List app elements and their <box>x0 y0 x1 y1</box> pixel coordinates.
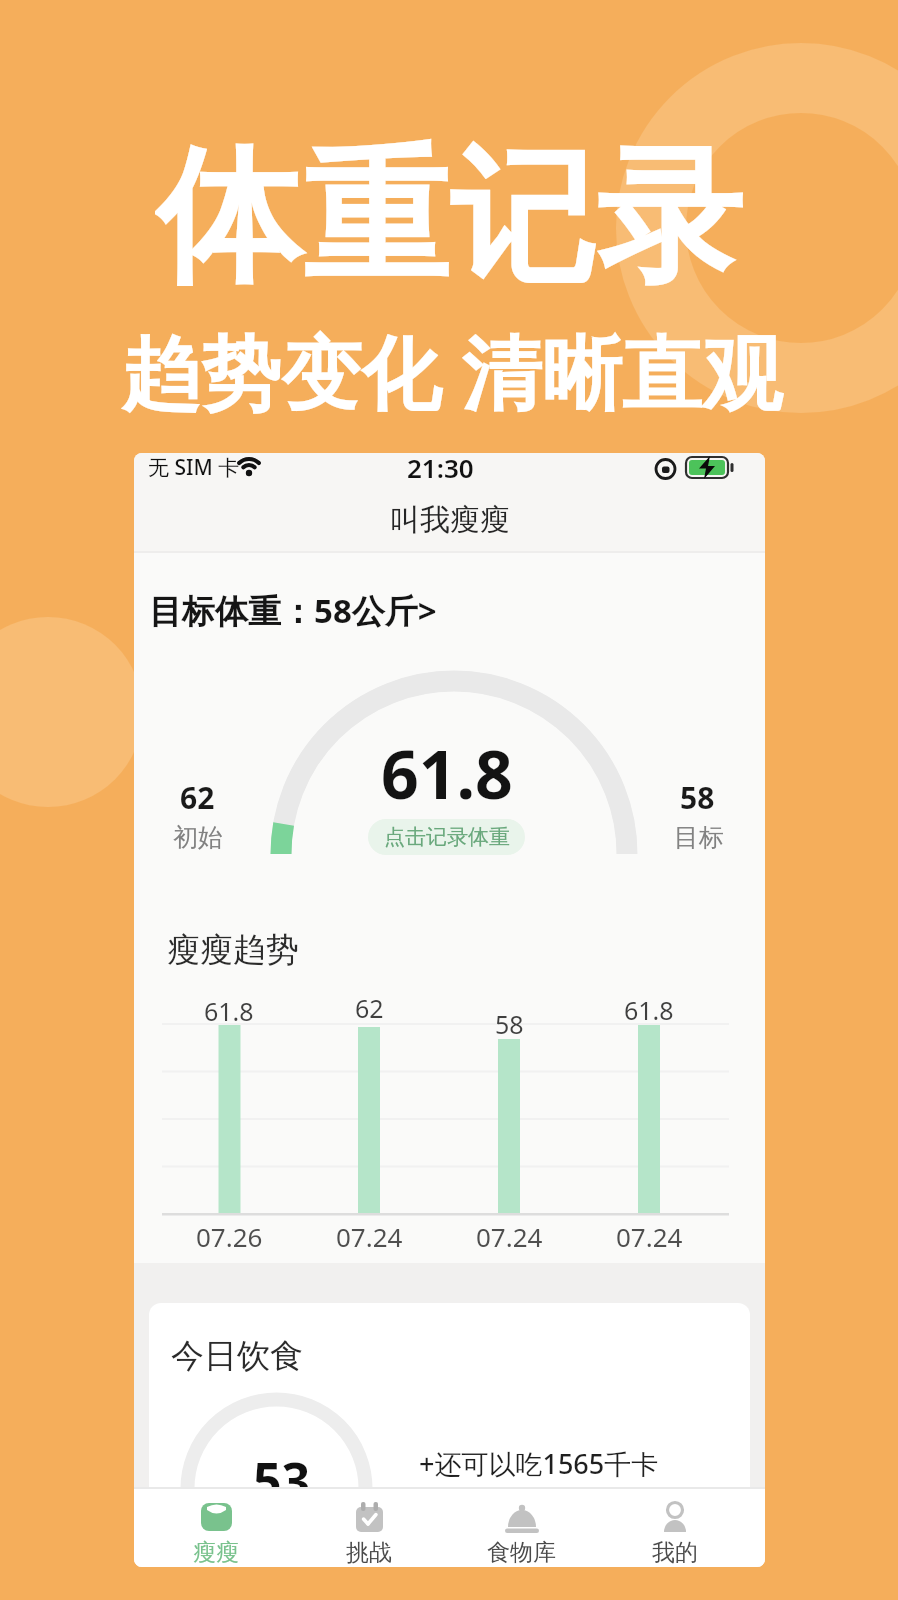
button[interactable]: 食物库 <box>445 1489 598 1567</box>
staticText: 62 <box>355 991 384 1025</box>
staticText: 今日饮食 <box>171 1335 303 1377</box>
staticText: 61.8 <box>624 993 674 1027</box>
button[interactable]: 我的 <box>598 1489 751 1567</box>
staticText: 瘦瘦 <box>193 1538 239 1567</box>
staticText: 趋势变化 清晰直观 <box>121 316 782 425</box>
button[interactable] <box>146 581 486 637</box>
staticText: 初始 <box>173 822 223 853</box>
staticText: 目标 <box>674 822 724 853</box>
button[interactable] <box>149 1303 750 1567</box>
staticText: 体重记录 <box>155 126 743 286</box>
staticText: 53 <box>253 1446 311 1514</box>
staticText: 07.24 <box>336 1219 403 1254</box>
button[interactable]: 点击记录体重 <box>368 819 525 855</box>
button[interactable]: 瘦瘦 <box>140 1489 292 1567</box>
button[interactable]: 挑战 <box>292 1489 445 1567</box>
staticText: 目标体重：58公斤> <box>149 588 437 633</box>
staticText: 58 <box>680 777 715 818</box>
staticText: 07.24 <box>476 1219 543 1254</box>
staticText: 叫我瘦瘦 <box>390 501 510 539</box>
staticText: 无 SIM 卡 <box>148 453 240 482</box>
staticText: 挑战 <box>346 1538 392 1567</box>
staticText: +还可以吃1565千卡 <box>419 1445 659 1482</box>
staticText: 07.24 <box>616 1219 683 1254</box>
staticText: 瘦瘦趋势 <box>167 929 299 971</box>
staticText: 07.26 <box>196 1219 263 1254</box>
staticText: 62 <box>180 777 215 818</box>
staticText: 我的 <box>652 1538 698 1567</box>
staticText: 21:30 <box>407 453 474 485</box>
staticText: 食物库 <box>487 1538 556 1567</box>
staticText: 58 <box>495 1007 524 1041</box>
staticText: 点击记录体重 <box>384 824 510 850</box>
staticText: 61.8 <box>204 994 254 1028</box>
staticText: 61.8 <box>381 728 513 818</box>
